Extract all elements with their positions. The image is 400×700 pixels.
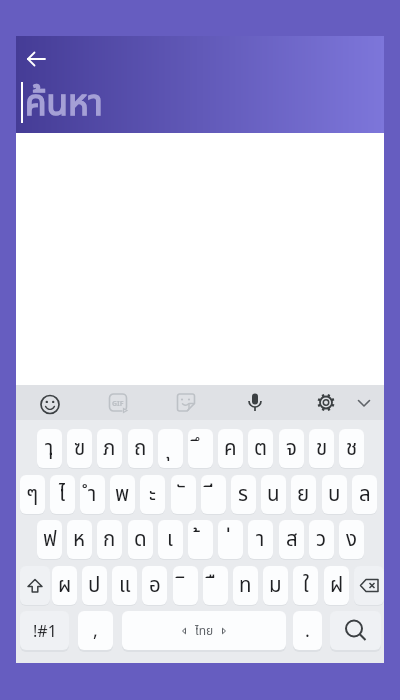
button[interactable]: พ: [110, 475, 135, 514]
button[interactable]: [170, 387, 202, 418]
button[interactable]: ล: [352, 475, 377, 514]
button[interactable]: [34, 387, 66, 418]
button[interactable]: [239, 387, 271, 418]
staticText: ป: [88, 570, 101, 601]
staticText: ย: [297, 479, 310, 510]
button[interactable]: ส: [279, 520, 304, 559]
button[interactable]: ถ: [128, 429, 153, 468]
button[interactable]: ี: [201, 475, 226, 514]
button[interactable]: อ: [142, 566, 167, 605]
staticText: ต: [254, 433, 268, 464]
button[interactable]: ๅ: [37, 429, 62, 468]
button[interactable]: ภ: [97, 429, 122, 468]
staticText: ,: [93, 618, 98, 643]
button[interactable]: [20, 566, 50, 605]
button[interactable]: [330, 611, 381, 650]
button[interactable]: ไ: [50, 475, 75, 514]
staticText: ผ: [58, 570, 72, 601]
button[interactable]: ย: [291, 475, 316, 514]
button[interactable]: ค: [218, 429, 243, 468]
staticText: ร: [238, 479, 249, 510]
staticText: แ: [119, 570, 131, 601]
staticText: ม: [269, 570, 282, 601]
staticText: ฝ: [330, 570, 344, 601]
staticText: ฃ: [74, 433, 86, 464]
button[interactable]: .: [293, 611, 322, 650]
button[interactable]: ช: [339, 429, 364, 468]
staticText: ๅ: [45, 433, 54, 464]
staticText: น: [267, 479, 280, 510]
staticText: .: [305, 618, 310, 643]
button[interactable]: !#1: [20, 611, 69, 650]
button[interactable]: ื: [203, 566, 228, 605]
button[interactable]: ๆ: [20, 475, 45, 514]
staticText: ภ: [103, 433, 116, 464]
staticText: ถ: [134, 433, 147, 464]
staticText: ค้นหา: [25, 78, 103, 131]
button[interactable]: [354, 566, 384, 605]
staticText: ำ: [88, 479, 97, 510]
staticText: พ: [115, 479, 130, 510]
staticText: ข: [316, 433, 328, 464]
button[interactable]: ้: [188, 520, 213, 559]
button[interactable]: แ: [112, 566, 137, 605]
button[interactable]: ฝ: [324, 566, 349, 605]
staticText: ๆ: [26, 479, 39, 510]
button[interactable]: GIF: [102, 387, 134, 418]
staticText: ล: [359, 479, 371, 510]
button[interactable]: ป: [82, 566, 107, 605]
staticText: ก: [103, 524, 116, 555]
button[interactable]: จ: [279, 429, 304, 468]
button[interactable]: ร: [231, 475, 256, 514]
button[interactable]: ง: [339, 520, 364, 559]
button[interactable]: ผ: [52, 566, 77, 605]
staticText: ะ: [149, 479, 156, 510]
staticText: จ: [286, 433, 297, 464]
button[interactable]: ใ: [293, 566, 318, 605]
staticText: เ: [167, 524, 174, 555]
button[interactable]: ึ: [188, 429, 213, 468]
button[interactable]: ำ: [80, 475, 105, 514]
button[interactable]: ไทย: [122, 611, 286, 650]
staticText: ห: [73, 524, 86, 555]
button[interactable]: ่: [218, 520, 243, 559]
button[interactable]: ห: [67, 520, 92, 559]
staticText: ค: [224, 433, 237, 464]
button[interactable]: ว: [309, 520, 334, 559]
staticText: ไ: [59, 479, 66, 510]
staticText: ฟ: [43, 524, 57, 555]
button[interactable]: [348, 387, 380, 418]
button[interactable]: ะ: [140, 475, 165, 514]
staticText: GIF: [112, 399, 124, 409]
button[interactable]: ข: [309, 429, 334, 468]
button[interactable]: เ: [158, 520, 183, 559]
staticText: ค้นหา: [25, 78, 103, 131]
button[interactable]: [310, 387, 342, 418]
staticText: ท: [239, 570, 252, 601]
button[interactable]: [20, 44, 56, 80]
button[interactable]: ท: [233, 566, 258, 605]
staticText: ว: [316, 524, 327, 555]
button[interactable]: า: [248, 520, 273, 559]
button[interactable]: ด: [128, 520, 153, 559]
staticText: ด: [134, 524, 147, 555]
button[interactable]: น: [261, 475, 286, 514]
button[interactable]: ต: [248, 429, 273, 468]
button[interactable]: ฃ: [67, 429, 92, 468]
button[interactable]: ,: [78, 611, 113, 650]
button[interactable]: ก: [97, 520, 122, 559]
button[interactable]: ม: [263, 566, 288, 605]
staticText: อ: [149, 570, 161, 601]
button[interactable]: ุ: [158, 429, 183, 468]
button[interactable]: ั: [171, 475, 196, 514]
staticText: า: [256, 524, 265, 555]
staticText: !#1: [33, 620, 57, 642]
button[interactable]: ิ: [173, 566, 198, 605]
staticText: บ: [328, 479, 341, 510]
button[interactable]: ฟ: [37, 520, 62, 559]
staticText: ส: [286, 524, 298, 555]
staticText: ใ: [303, 570, 309, 601]
staticText: ช: [346, 433, 358, 464]
button[interactable]: บ: [322, 475, 347, 514]
staticText: ง: [346, 524, 358, 555]
